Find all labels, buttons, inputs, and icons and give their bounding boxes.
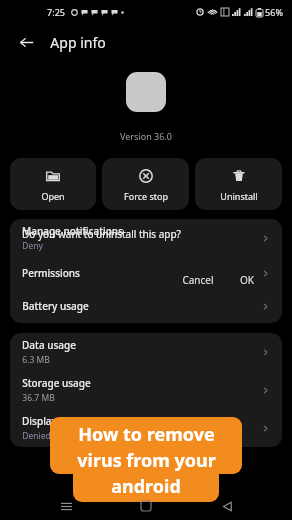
staticText: Manage notifications: [22, 224, 123, 238]
button[interactable]: Battery usage: [10, 289, 282, 323]
staticText: Force stop: [124, 190, 168, 202]
staticText: Storage usage: [22, 376, 91, 390]
staticText: Battery usage: [22, 299, 89, 313]
button[interactable]: OK: [234, 271, 260, 289]
button[interactable]: Manage notifications: [10, 219, 282, 257]
staticText: Denied: [22, 430, 51, 442]
staticText: How to remove: [78, 422, 215, 447]
staticText: OK: [240, 273, 254, 287]
staticText: virus from your: [77, 448, 216, 473]
staticText: Data usage: [22, 338, 76, 352]
staticText: Cancel: [182, 273, 214, 287]
button[interactable]: Display over other apps: [10, 409, 282, 447]
button[interactable]: android: [73, 474, 219, 502]
button[interactable]: Recents: [51, 492, 81, 520]
button[interactable]: Cancel: [176, 271, 220, 289]
button[interactable]: Uninstall: [195, 158, 282, 210]
button[interactable]: Open: [10, 158, 96, 210]
staticText: 6.3 MB: [22, 354, 50, 366]
staticText: Deny: [22, 240, 43, 252]
button[interactable]: Home: [131, 492, 161, 520]
staticText: 36.7 MB: [22, 392, 55, 404]
staticText: Version 36.0: [120, 130, 172, 142]
staticText: Display over other apps: [22, 414, 135, 428]
button[interactable]: Permissions: [10, 257, 282, 289]
staticText: Do you want to uninstall this app?: [22, 227, 181, 241]
staticText: Open: [41, 190, 65, 202]
button[interactable]: Back: [212, 492, 242, 520]
button[interactable]: How to remove: [50, 417, 242, 474]
staticText: Permissions: [22, 266, 80, 280]
staticText: android: [111, 474, 181, 499]
button[interactable]: Back: [11, 27, 41, 57]
button[interactable]: Data usage: [10, 333, 282, 371]
staticText: App info: [50, 33, 106, 52]
staticText: 56%: [265, 6, 283, 18]
button[interactable]: Force stop: [102, 158, 189, 210]
staticText: Uninstall: [220, 190, 258, 202]
staticText: 7:25: [47, 6, 65, 18]
button[interactable]: Storage usage: [10, 371, 282, 409]
